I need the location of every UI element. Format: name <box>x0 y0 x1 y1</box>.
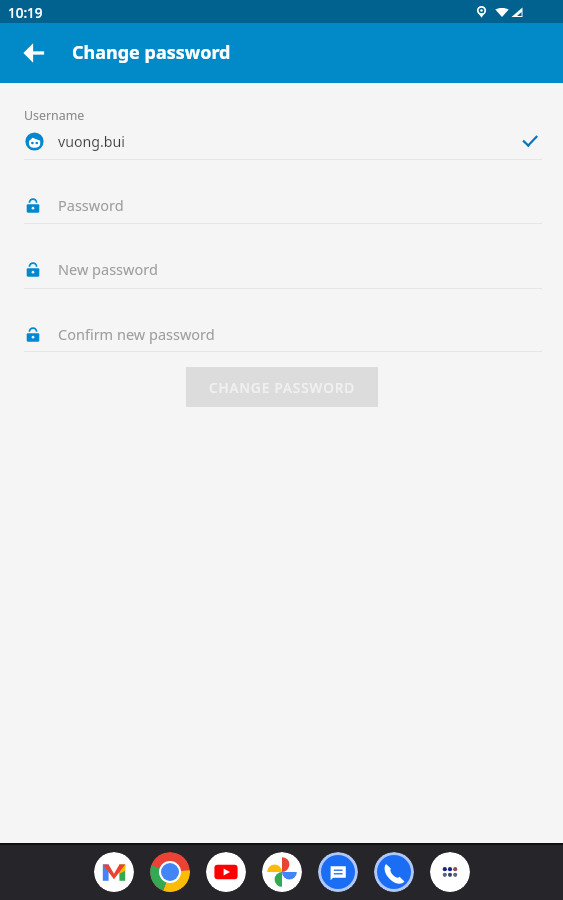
button[interactable]: Confirm new password <box>0 316 563 352</box>
staticText: Change password <box>72 40 231 65</box>
staticText: vuong.bui <box>58 132 126 151</box>
staticText: CHANGE PASSWORD <box>209 378 356 397</box>
button[interactable]: New password <box>0 251 563 287</box>
staticText: Username <box>24 107 85 124</box>
button[interactable]: Password <box>0 187 563 223</box>
button[interactable]: vuong.bui <box>0 123 563 159</box>
button[interactable]: Gmail <box>94 852 134 892</box>
button[interactable]: Messages <box>318 852 358 892</box>
staticText: New password <box>58 259 158 279</box>
button[interactable]: All apps <box>430 852 470 892</box>
button[interactable]: CHANGE PASSWORD <box>186 367 378 407</box>
button[interactable]: YouTube <box>206 852 246 892</box>
button[interactable]: Chrome <box>150 852 190 892</box>
staticText: 10:19 <box>8 4 43 22</box>
button[interactable]: Phone <box>374 852 414 892</box>
button[interactable]: Photos <box>262 852 302 892</box>
button[interactable]: Back <box>14 33 54 73</box>
staticText: Confirm new password <box>58 324 215 344</box>
staticText: Password <box>58 195 124 215</box>
